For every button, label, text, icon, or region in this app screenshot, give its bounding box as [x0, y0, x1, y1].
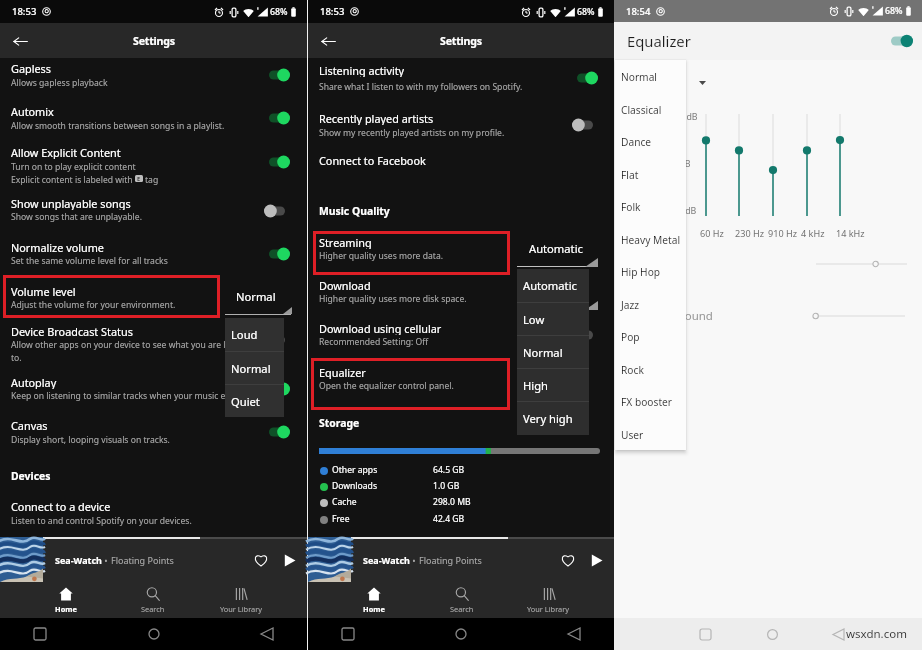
staticText: Recently played artists [319, 111, 434, 125]
button[interactable]: Normal [517, 336, 589, 368]
staticText: Home [363, 604, 385, 614]
staticText: Heavy Metal [621, 233, 681, 247]
button[interactable]: Heavy Metal [615, 223, 686, 256]
staticText: Search [450, 604, 474, 614]
staticText: Devices [11, 469, 51, 483]
staticText: Low [523, 312, 545, 327]
staticText: Allow Explicit Content [11, 145, 121, 159]
button[interactable]: Loud [225, 318, 284, 351]
staticText: Keep on listening to similar tracks when… [11, 390, 243, 402]
button[interactable]: Home [330, 582, 418, 618]
staticText: Sea-Watch [363, 554, 410, 566]
staticText: Rock [621, 363, 644, 377]
button[interactable]: Toggle, off [264, 333, 285, 347]
staticText: 0 dB [672, 158, 691, 170]
button[interactable]: Toggle, off [572, 328, 593, 342]
button[interactable]: Automatic [517, 269, 589, 302]
button[interactable]: Back [315, 28, 341, 54]
button[interactable]: Search [109, 582, 197, 618]
button[interactable]: Back [7, 28, 33, 54]
button[interactable] [308, 364, 614, 396]
button[interactable]: Toggle, on [269, 111, 290, 125]
staticText: Show songs that are unplayable. [11, 211, 142, 223]
button[interactable]: Toggle, off [264, 204, 285, 218]
button[interactable]: User [615, 418, 686, 450]
staticText: Sea-Watch [55, 554, 102, 566]
staticText: 18:53 [320, 5, 345, 18]
button[interactable]: Toggle, on [269, 247, 290, 261]
button[interactable]: Play [276, 547, 302, 573]
staticText: Search [141, 604, 165, 614]
button[interactable]: Dance [615, 125, 686, 158]
button[interactable]: Quiet [225, 385, 284, 417]
button[interactable] [0, 144, 307, 190]
button[interactable]: Folk [615, 190, 686, 223]
button[interactable]: FX booster [615, 385, 686, 418]
button[interactable]: Your Library [505, 582, 592, 618]
button[interactable] [308, 320, 614, 352]
button[interactable] [0, 283, 307, 315]
button[interactable] [308, 234, 614, 266]
staticText: 18:54 [626, 5, 651, 18]
staticText: Connect to a device [11, 499, 111, 513]
button[interactable]: Rock [615, 353, 686, 386]
staticText: • [410, 554, 419, 566]
button[interactable] [308, 110, 614, 142]
staticText: User [621, 428, 644, 442]
button[interactable]: Toggle, off [572, 118, 593, 132]
button[interactable] [0, 323, 307, 367]
button[interactable] [0, 239, 307, 271]
staticText: Explicit content is labeled with [11, 174, 133, 186]
button[interactable]: Low [517, 303, 589, 335]
button[interactable]: Toggle, on [577, 71, 598, 85]
staticText: Normal [621, 70, 657, 84]
button[interactable] [308, 62, 614, 96]
button[interactable] [0, 195, 307, 227]
staticText: 298.0 MB [433, 496, 471, 508]
button[interactable]: Home [22, 582, 109, 618]
button[interactable]: Enable equalizer [891, 34, 913, 48]
button[interactable]: Flat [615, 158, 686, 191]
button[interactable] [0, 103, 307, 135]
button[interactable]: Like [248, 547, 274, 573]
button[interactable]: Jazz [615, 288, 686, 321]
button[interactable]: Play [583, 547, 609, 573]
staticText: Settings [440, 34, 482, 48]
staticText: 18:53 [12, 5, 37, 18]
staticText: Download using cellular [319, 321, 442, 335]
staticText: 68% [270, 6, 288, 18]
button[interactable] [308, 277, 614, 309]
staticText: Higher quality uses more disk space. [319, 293, 467, 305]
staticText: E [137, 175, 141, 182]
button[interactable]: Like [555, 547, 581, 573]
button[interactable]: Classical [615, 93, 686, 126]
button[interactable]: Volume level, Normal [225, 285, 292, 315]
button[interactable]: Very high [517, 402, 589, 434]
button[interactable]: Toggle, on [269, 382, 290, 396]
button[interactable]: High [517, 369, 589, 401]
button[interactable]: Streaming quality, Automatic [517, 237, 598, 266]
button[interactable] [0, 417, 307, 449]
button[interactable]: Pop [615, 320, 686, 353]
button[interactable]: Your Library [197, 582, 285, 618]
button[interactable]: Search [418, 582, 505, 618]
button[interactable] [0, 60, 307, 92]
staticText: Storage [319, 416, 360, 430]
button[interactable]: Toggle, on [269, 425, 290, 439]
staticText: Very high [523, 411, 573, 426]
button[interactable] [0, 374, 307, 406]
staticText: Music Quality [319, 204, 390, 218]
button[interactable]: Toggle, on [269, 155, 290, 169]
staticText: -15 dB [670, 205, 697, 217]
staticText: tag [145, 174, 159, 186]
staticText: Home [55, 604, 77, 614]
button[interactable] [308, 152, 614, 172]
staticText: Adjust the volume for your environment. [11, 299, 176, 311]
staticText: Automix [11, 104, 54, 118]
button[interactable]: Hip Hop [615, 255, 686, 288]
button[interactable]: Toggle, on [269, 68, 290, 82]
button[interactable] [0, 498, 307, 530]
button[interactable]: Normal [615, 60, 686, 93]
button[interactable]: Normal [225, 352, 284, 384]
staticText: 42.4 GB [433, 513, 465, 525]
